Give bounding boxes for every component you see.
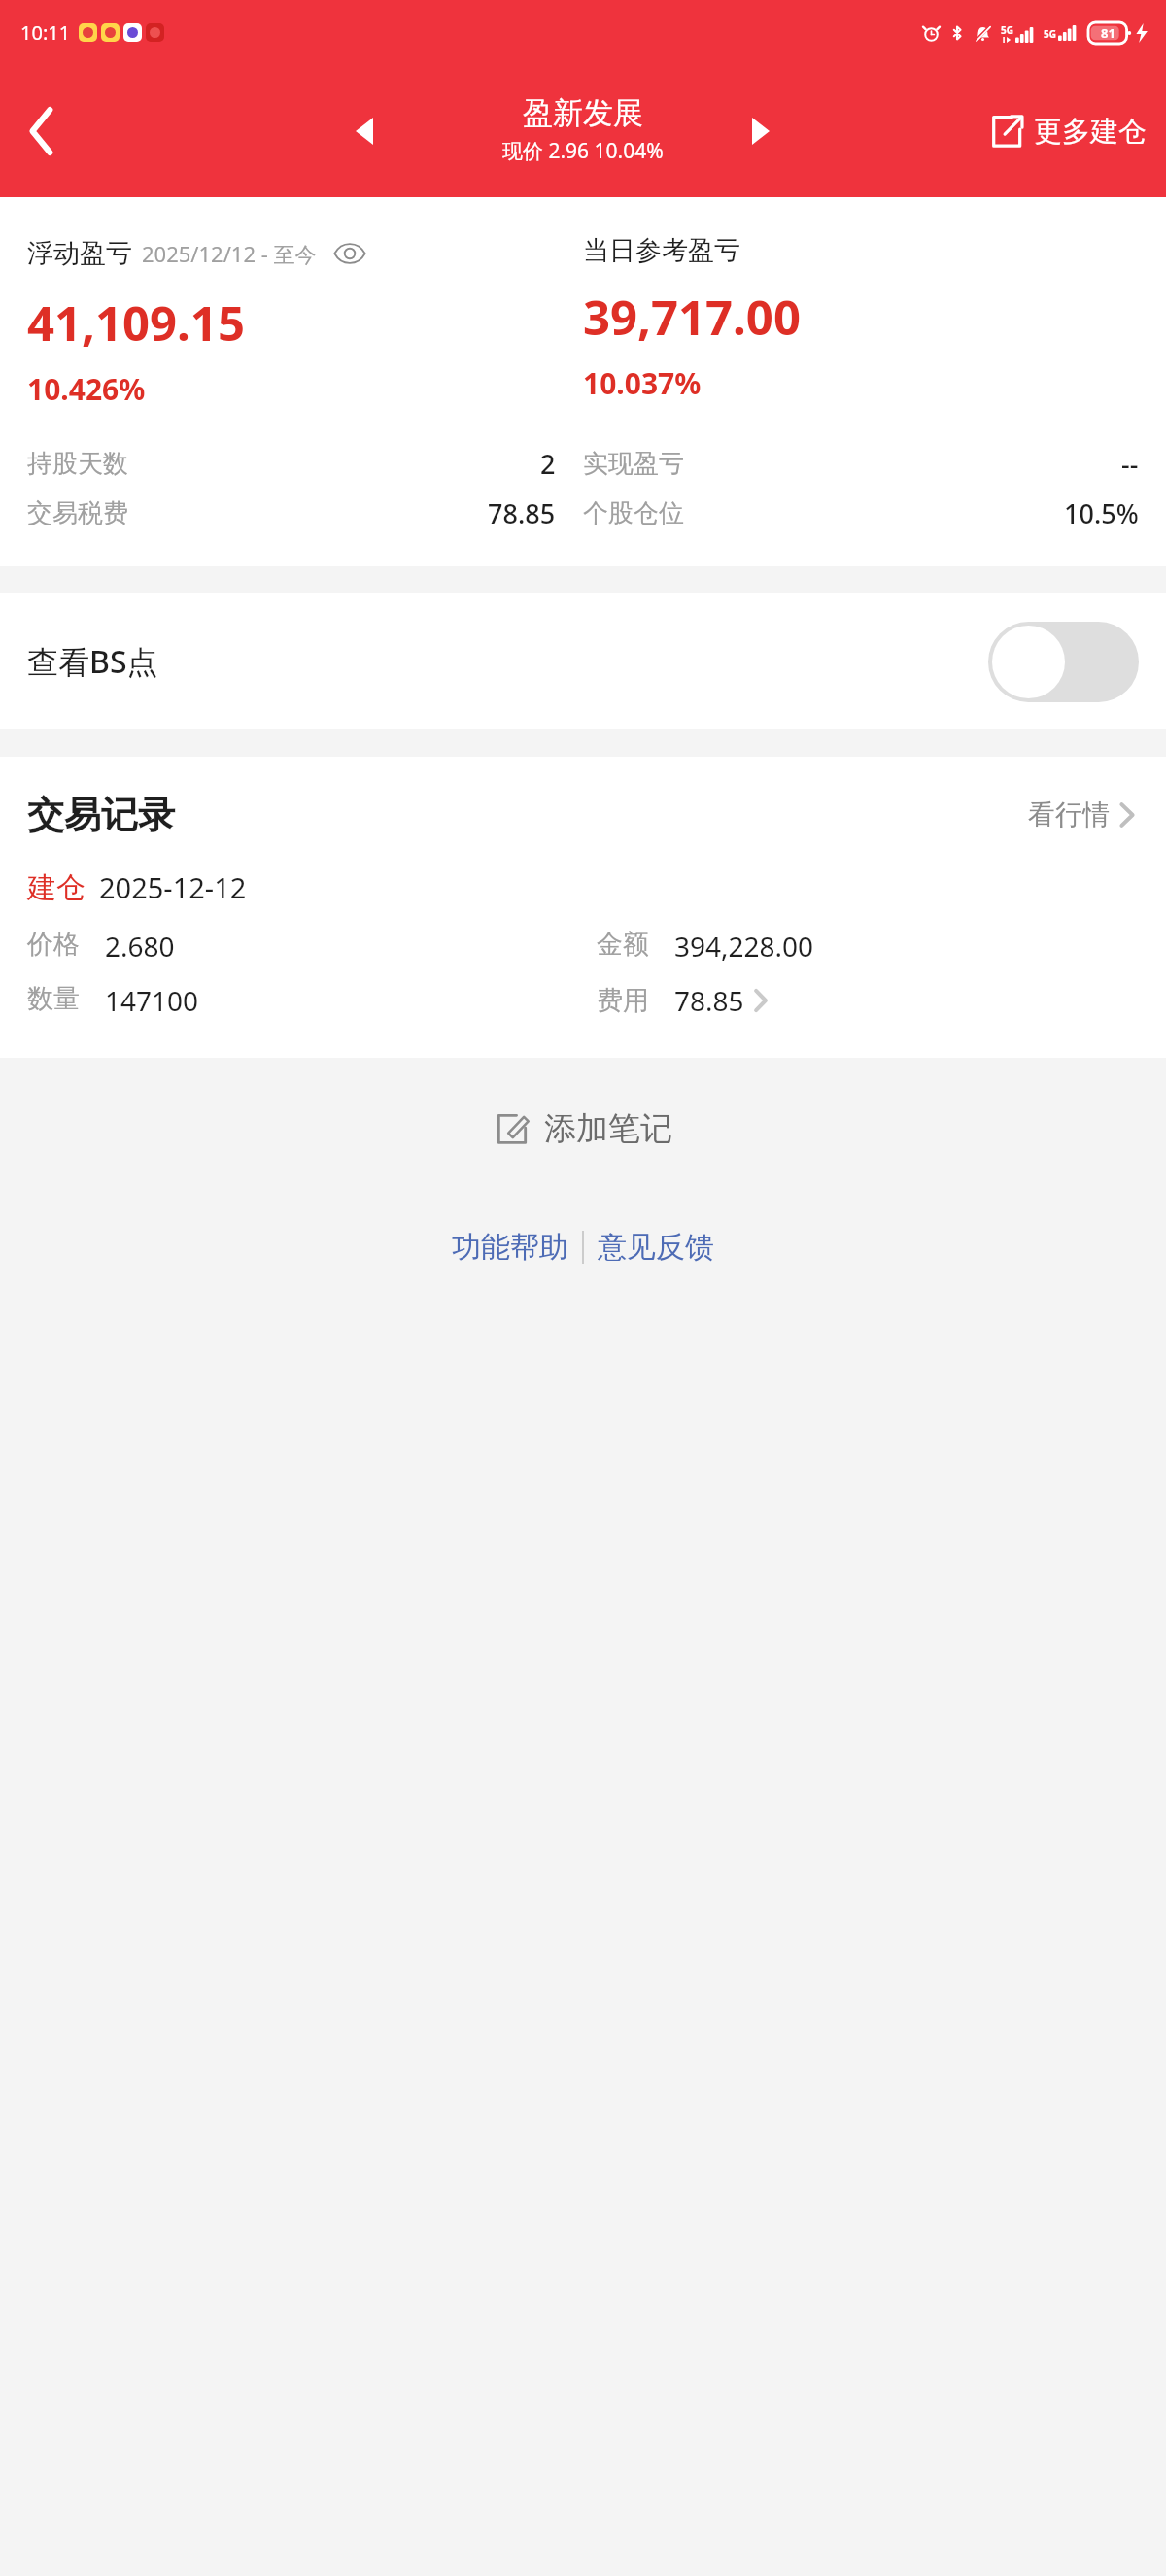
staticText: 10:11 [20,19,71,46]
staticText: -- [1121,446,1139,482]
staticText: 2 [540,446,556,482]
staticText: 金额 [597,928,649,961]
staticText: 交易记录 [27,792,175,838]
button[interactable]: Next stock [727,97,795,165]
staticText: 41,109.15 [27,290,245,356]
staticText: 147100 [105,982,199,1019]
staticText: 5G [1001,23,1013,37]
staticText: 功能帮助 [452,1229,568,1266]
staticText: 意见反馈 [598,1229,714,1266]
button[interactable]: Toggle visibility [330,234,369,273]
staticText: 建仓 [27,869,86,906]
staticText: 浮动盈亏 [27,237,132,270]
staticText: 当日参考盈亏 [583,234,740,267]
button[interactable]: 意见反馈 [584,1219,728,1275]
staticText: 2.680 [105,928,175,965]
staticText: 查看BS点 [27,640,158,683]
staticText: 78.85 [488,495,556,531]
button[interactable]: 更多建仓 [982,103,1152,159]
staticText: 39,717.00 [583,285,801,350]
staticText: 更多建仓 [1034,114,1147,150]
button[interactable]: 看行情 [1020,790,1143,839]
staticText: 5G [1044,27,1056,41]
staticText: 盈新发展 [523,94,643,132]
staticText: 10.5% [1064,495,1139,531]
staticText: 现价 2.96 10.04% [502,137,664,165]
staticText: 个股仓位 [583,497,684,529]
staticText: 数量 [27,982,80,1015]
button[interactable]: 添加笔记 [474,1097,692,1161]
staticText: 2025/12/12 - 至今 [142,239,317,268]
button[interactable]: Previous stock [330,97,398,165]
staticText: 价格 [27,928,80,961]
staticText: 持股天数 [27,448,128,480]
staticText: 10.037% [583,363,702,403]
staticText: 看行情 [1028,797,1110,831]
staticText: 2025-12-12 [99,868,247,906]
staticText: 78.85 [674,982,744,1019]
staticText: 394,228.00 [674,928,814,965]
staticText: 添加笔记 [544,1108,672,1149]
button[interactable]: 查看BS点 [0,593,1166,729]
button[interactable]: 建仓 [0,868,1166,1019]
staticText: 费用 [597,984,649,1017]
staticText: 10.426% [27,369,146,409]
button[interactable]: 功能帮助 [438,1219,582,1275]
staticText: 81 [1101,24,1115,42]
staticText: 实现盈亏 [583,448,684,480]
staticText: 交易税费 [27,497,128,529]
button[interactable]: Back [0,89,84,173]
